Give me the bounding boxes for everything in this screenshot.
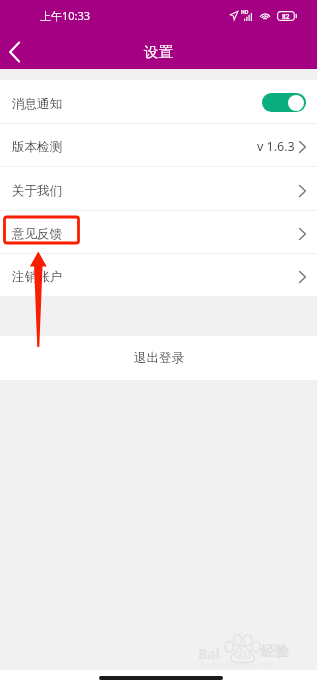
button[interactable]: 消息通知 xyxy=(0,80,317,123)
staticText: 消息通知 xyxy=(12,96,62,112)
staticText: 意见反馈 xyxy=(12,226,62,242)
button[interactable]: 退出登录 xyxy=(0,336,317,380)
staticText: 版本检测 xyxy=(12,139,62,155)
button[interactable]: 版本检测 xyxy=(0,123,317,166)
staticText: 关于我们 xyxy=(12,183,62,199)
button[interactable]: 关于我们 xyxy=(0,167,317,210)
button[interactable]: Back xyxy=(0,28,34,69)
button[interactable]: 意见反馈 xyxy=(0,210,317,253)
staticText: 注销账户 xyxy=(12,269,62,285)
staticText: 82 xyxy=(282,12,290,21)
button[interactable]: 注销账户 xyxy=(0,253,317,296)
staticText: jingyan.baidu.com xyxy=(201,659,275,671)
staticText: v 1.6.3 xyxy=(257,138,295,155)
staticText: 设置 xyxy=(144,43,173,61)
staticText: 退出登录 xyxy=(134,350,184,366)
staticText: HD xyxy=(241,9,249,16)
staticText: Bai xyxy=(198,644,220,663)
staticText: du xyxy=(234,644,252,663)
staticText: 经验 xyxy=(261,643,289,661)
button[interactable]: 消息通知 toggle xyxy=(262,93,306,112)
staticText: 上午10:33 xyxy=(40,8,91,23)
